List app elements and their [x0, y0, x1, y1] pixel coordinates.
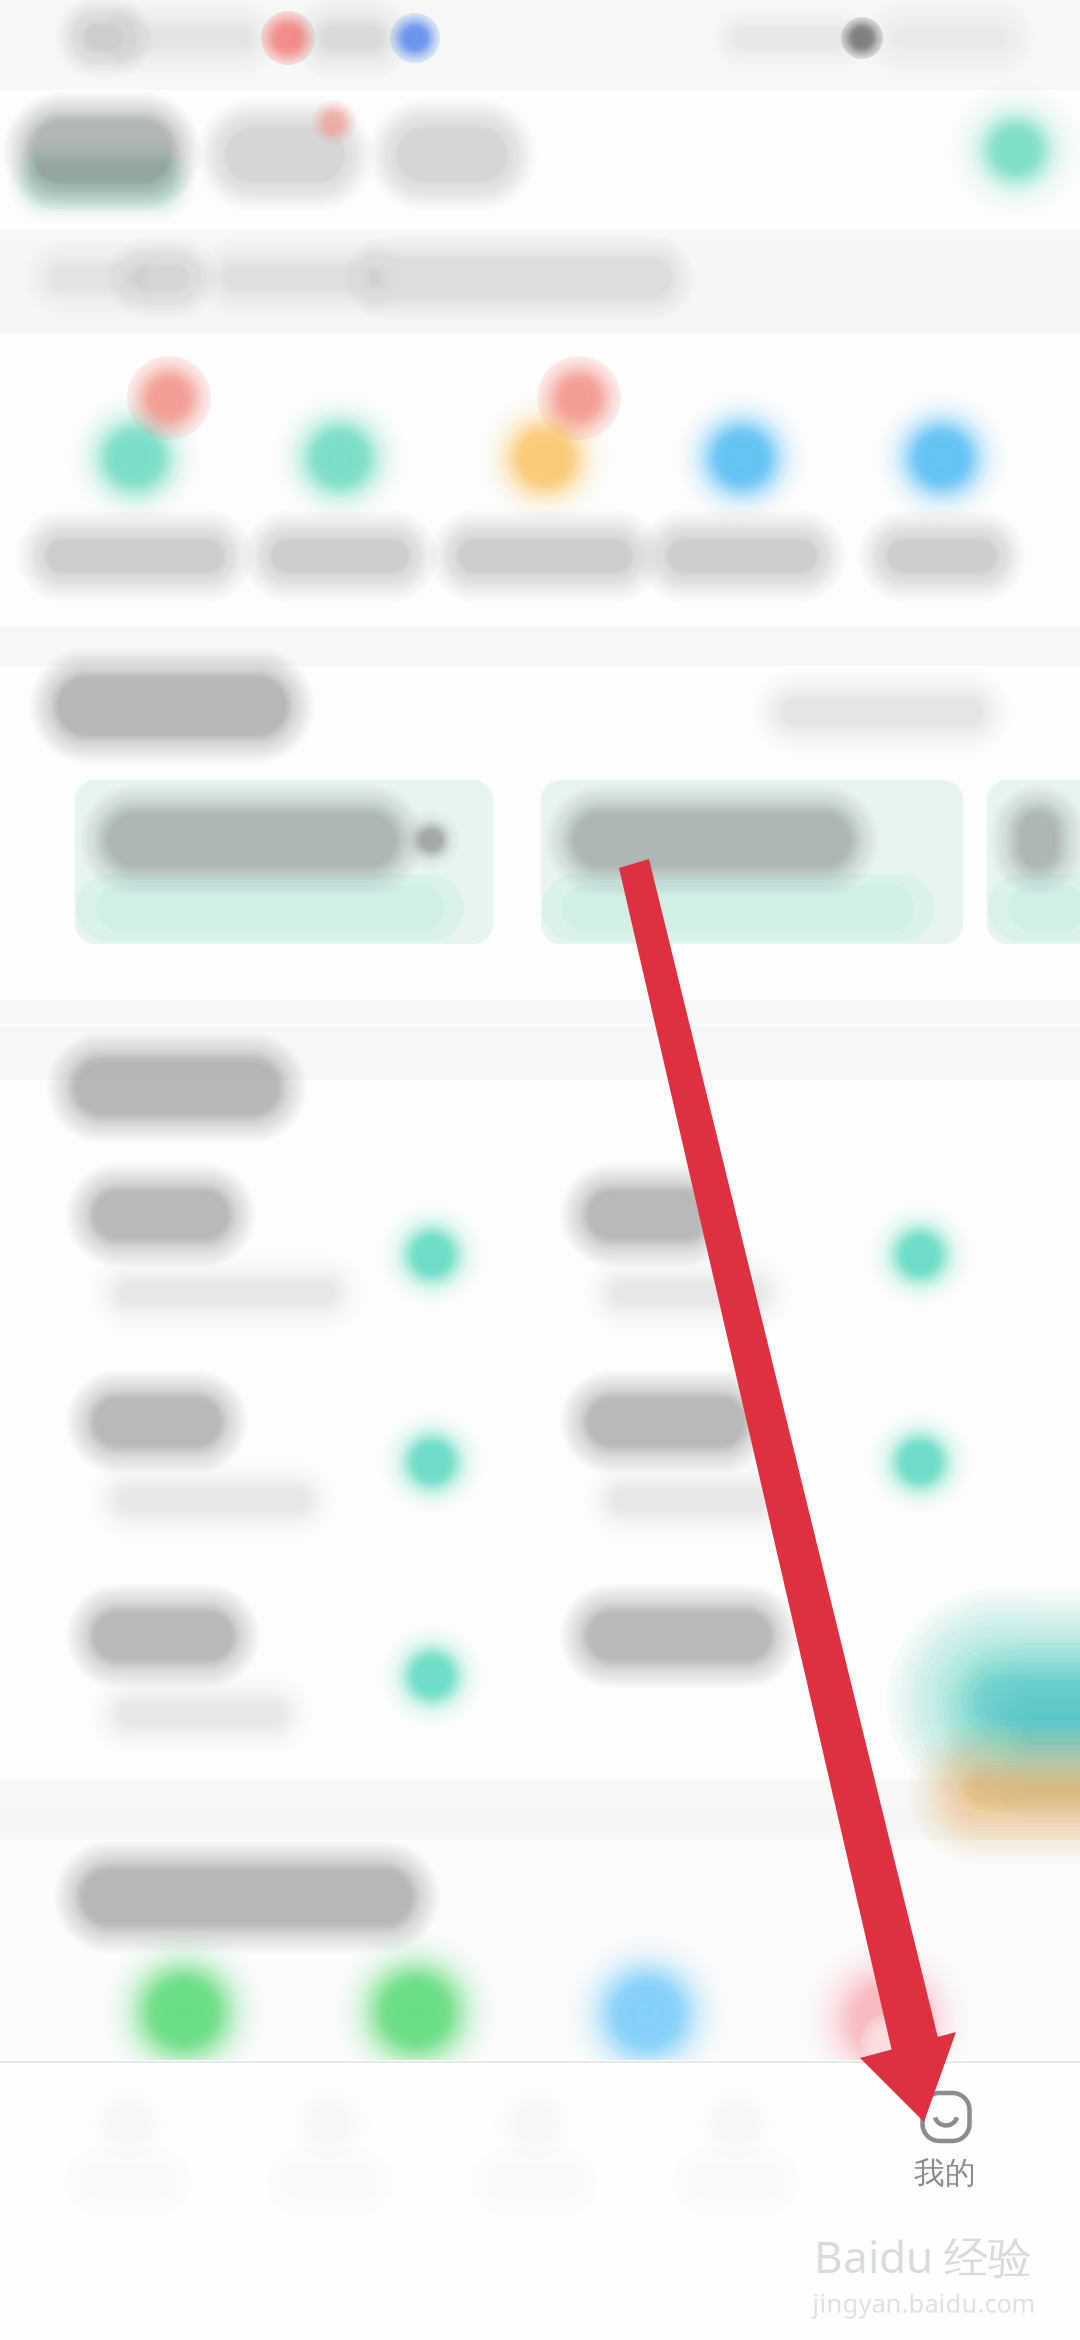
button[interactable]: Tab: [0, 0, 1080, 2340]
button[interactable]: Quick action: [0, 0, 1080, 2340]
staticText: jingyan.baidu.com: [812, 2286, 1035, 2320]
button[interactable]: Tab: [0, 0, 1080, 2340]
button[interactable]: Tab: [0, 0, 1080, 2340]
button[interactable]: Service: [0, 0, 1080, 2340]
button[interactable]: Promotion: [0, 0, 1080, 2340]
button[interactable]: Quick action: [0, 0, 1080, 2340]
button[interactable]: Promotion: [0, 0, 1080, 2340]
button[interactable]: Service: [0, 0, 1080, 2340]
staticText: Baidu 经验: [814, 2227, 1032, 2285]
button[interactable]: Quick action: [0, 0, 1080, 2340]
button[interactable]: Promotion: [0, 0, 1080, 2340]
button[interactable]: Quick action: [0, 0, 1080, 2340]
button[interactable]: 我的: [0, 0, 1080, 2340]
button[interactable]: Quick action: [0, 0, 1080, 2340]
button[interactable]: Service: [0, 0, 1080, 2340]
button[interactable]: Tab: [0, 0, 1080, 2340]
staticText: 我的: [914, 2154, 976, 2192]
button[interactable]: Service: [0, 0, 1080, 2340]
button[interactable]: Service: [0, 0, 1080, 2340]
button[interactable]: Service: [0, 0, 1080, 2340]
